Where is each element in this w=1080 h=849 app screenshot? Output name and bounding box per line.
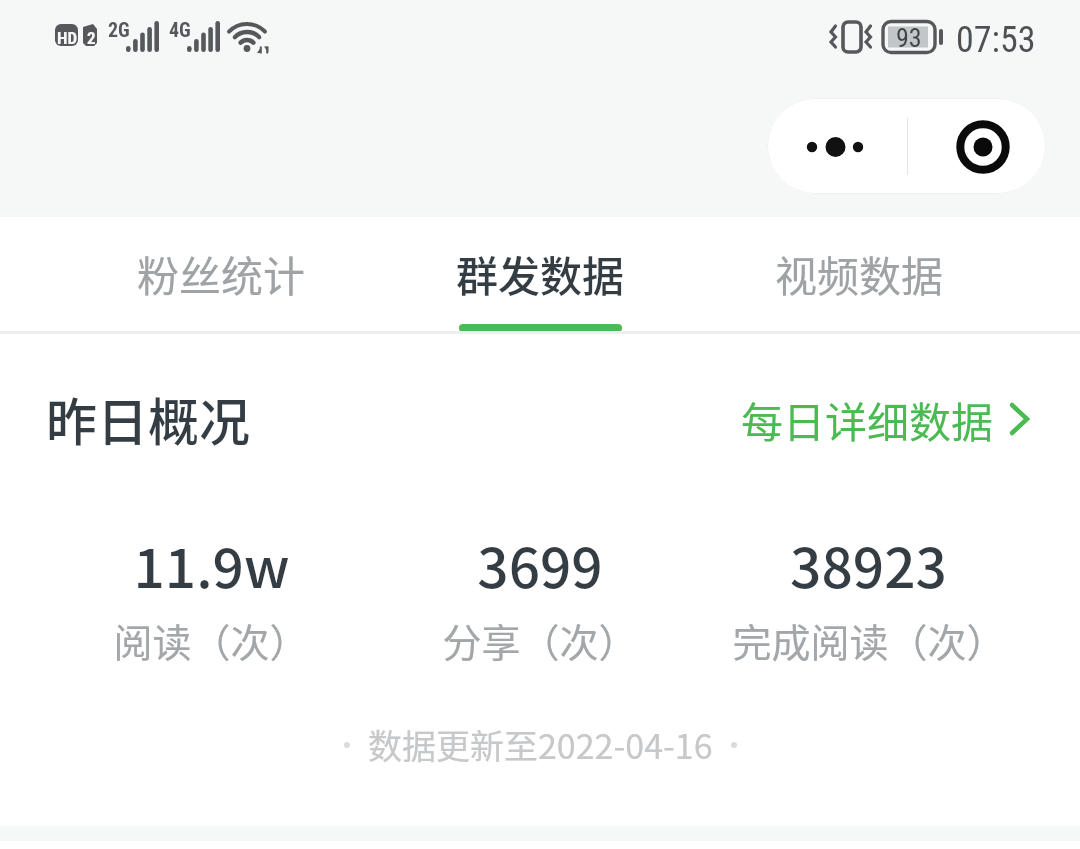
staticText: HD: [57, 28, 78, 48]
staticText: 群发数据: [456, 243, 625, 304]
staticText: 视频数据: [775, 243, 944, 304]
staticText: 2G: [108, 18, 130, 41]
button[interactable]: More options: [767, 98, 907, 194]
staticText: 分享（次）: [442, 612, 638, 668]
staticText: 93: [896, 23, 922, 53]
button[interactable]: 每日详细数据: [737, 381, 1036, 457]
staticText: 数据更新至2022-04-16: [368, 720, 713, 769]
button[interactable]: 视频数据: [700, 217, 1019, 334]
button[interactable]: 粉丝统计: [61, 217, 381, 334]
button[interactable]: 群发数据: [381, 217, 700, 334]
staticText: 昨日概况: [46, 382, 251, 456]
staticText: 粉丝统计: [137, 243, 306, 304]
staticText: 每日详细数据: [741, 389, 994, 449]
staticText: 07:53: [956, 19, 1036, 61]
staticText: 3699: [477, 524, 603, 604]
staticText: 阅读（次）: [113, 612, 309, 668]
staticText: 11.9w: [133, 524, 290, 604]
staticText: 完成阅读（次）: [732, 612, 1006, 668]
staticText: 4G: [169, 18, 191, 41]
button[interactable]: Close mini program: [908, 98, 1046, 194]
staticText: 38923: [790, 524, 947, 604]
staticText: 2: [87, 28, 96, 48]
